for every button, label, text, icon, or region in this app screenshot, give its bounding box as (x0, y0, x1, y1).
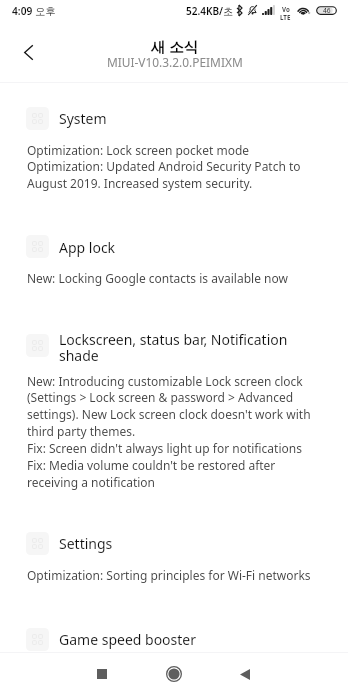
staticText: 새 소식 (151, 36, 199, 56)
staticText: Optimization: Lock screen pocket mode Op… (27, 142, 318, 192)
button[interactable]: Back (224, 653, 266, 695)
staticText: 4:09 오후 (12, 4, 56, 18)
button[interactable]: Back (10, 33, 46, 69)
staticText: New: Introducing customizable Lock scree… (27, 373, 318, 491)
staticText: 46 (323, 6, 331, 15)
staticText: LTE (280, 13, 291, 21)
staticText: New: Locking Google contacts is availabl… (27, 270, 318, 286)
button[interactable]: Home (153, 653, 195, 695)
button[interactable]: Recent apps (81, 653, 123, 695)
staticText: Optimization: Sorting principles for Wi-… (27, 567, 318, 583)
staticText: Vo (282, 5, 290, 13)
staticText: 52.4KB/초 (186, 4, 233, 18)
staticText: System (59, 109, 291, 128)
staticText: App lock (59, 238, 291, 257)
staticText: Settings (59, 534, 291, 553)
staticText: Lockscreen, status bar, Notification sha… (59, 330, 291, 365)
staticText: Game speed booster (59, 630, 291, 649)
staticText: MIUI-V10.3.2.0.PEIMIXM (107, 54, 243, 70)
